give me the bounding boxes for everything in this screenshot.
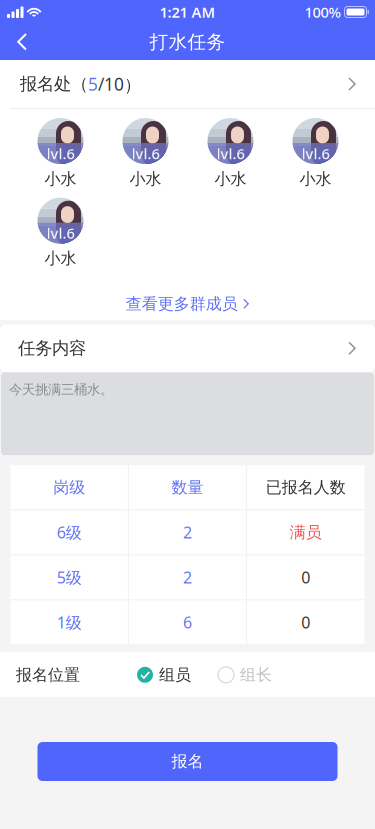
staticText: 6级 (57, 522, 82, 543)
staticText: 2 (183, 567, 192, 588)
button[interactable]: 组长 (218, 665, 272, 685)
staticText: 2 (183, 522, 192, 543)
button[interactable]: 报名 (37, 742, 337, 781)
staticText: 小水 (44, 169, 76, 189)
button[interactable]: 报名处（ (0, 60, 375, 108)
staticText: 打水任务 (149, 30, 225, 53)
staticText: lvl.6 (46, 223, 74, 243)
staticText: 岗级 (53, 477, 85, 497)
staticText: 今天挑满三桶水。 (9, 381, 113, 398)
staticText: 1级 (57, 612, 82, 633)
button[interactable]: Back (0, 24, 44, 60)
button[interactable]: 查看更多群成员 (126, 287, 249, 320)
staticText: lvl.6 (46, 144, 74, 163)
staticText: 组长 (240, 665, 272, 685)
staticText: 报名处（ (20, 73, 88, 95)
staticText: 报名位置 (16, 665, 80, 685)
staticText: 小水 (214, 169, 246, 189)
staticText: 0 (301, 612, 310, 633)
staticText: /10） (98, 72, 141, 95)
button[interactable]: 组员 (137, 665, 191, 685)
staticText: lvl.6 (131, 144, 159, 163)
staticText: 满员 (290, 522, 322, 542)
staticText: 小水 (299, 169, 331, 189)
staticText: 已报名人数 (266, 477, 346, 497)
button[interactable]: 任务内容 (0, 324, 375, 372)
staticText: 小水 (44, 249, 76, 268)
staticText: lvl.6 (216, 144, 244, 163)
staticText: 6 (183, 612, 192, 633)
staticText: 报名 (171, 752, 203, 771)
staticText: 100% (304, 2, 340, 22)
staticText: lvl.6 (301, 144, 329, 163)
staticText: 5级 (57, 567, 82, 588)
staticText: 任务内容 (18, 338, 86, 359)
staticText: 1:21 AM (159, 2, 215, 22)
staticText: 数量 (171, 477, 203, 497)
staticText: 0 (301, 567, 310, 588)
staticText: 小水 (129, 169, 161, 189)
staticText: 组员 (159, 665, 191, 685)
staticText: 5 (88, 72, 98, 95)
staticText: 查看更多群成员 (126, 294, 238, 314)
